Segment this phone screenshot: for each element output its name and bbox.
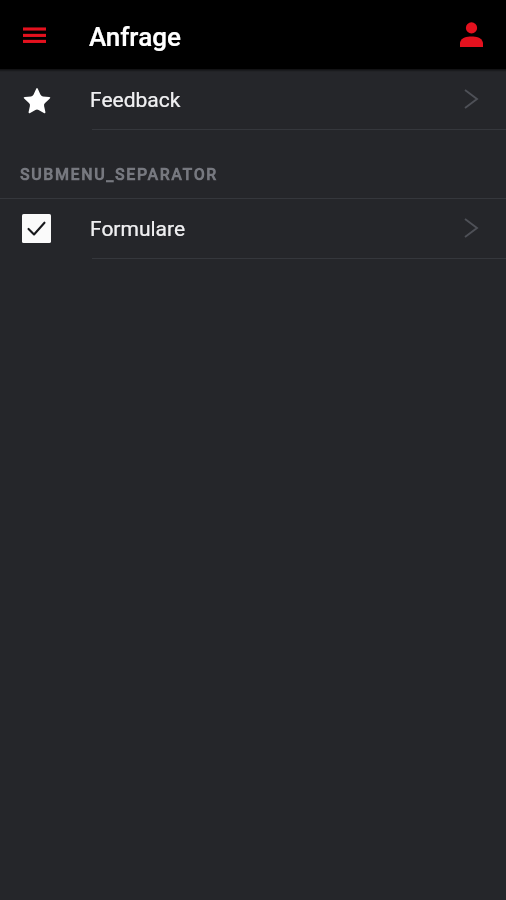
staticText: Anfrage	[89, 22, 181, 52]
staticText: SUBMENU_SEPARATOR	[20, 165, 218, 184]
button[interactable]: Formulare	[0, 198, 506, 258]
staticText: Formulare	[90, 217, 186, 242]
button[interactable]: Open navigation menu	[0, 0, 69, 69]
button[interactable]: Account	[437, 0, 506, 69]
button[interactable]: Feedback	[0, 69, 506, 129]
staticText: Feedback	[90, 88, 181, 113]
